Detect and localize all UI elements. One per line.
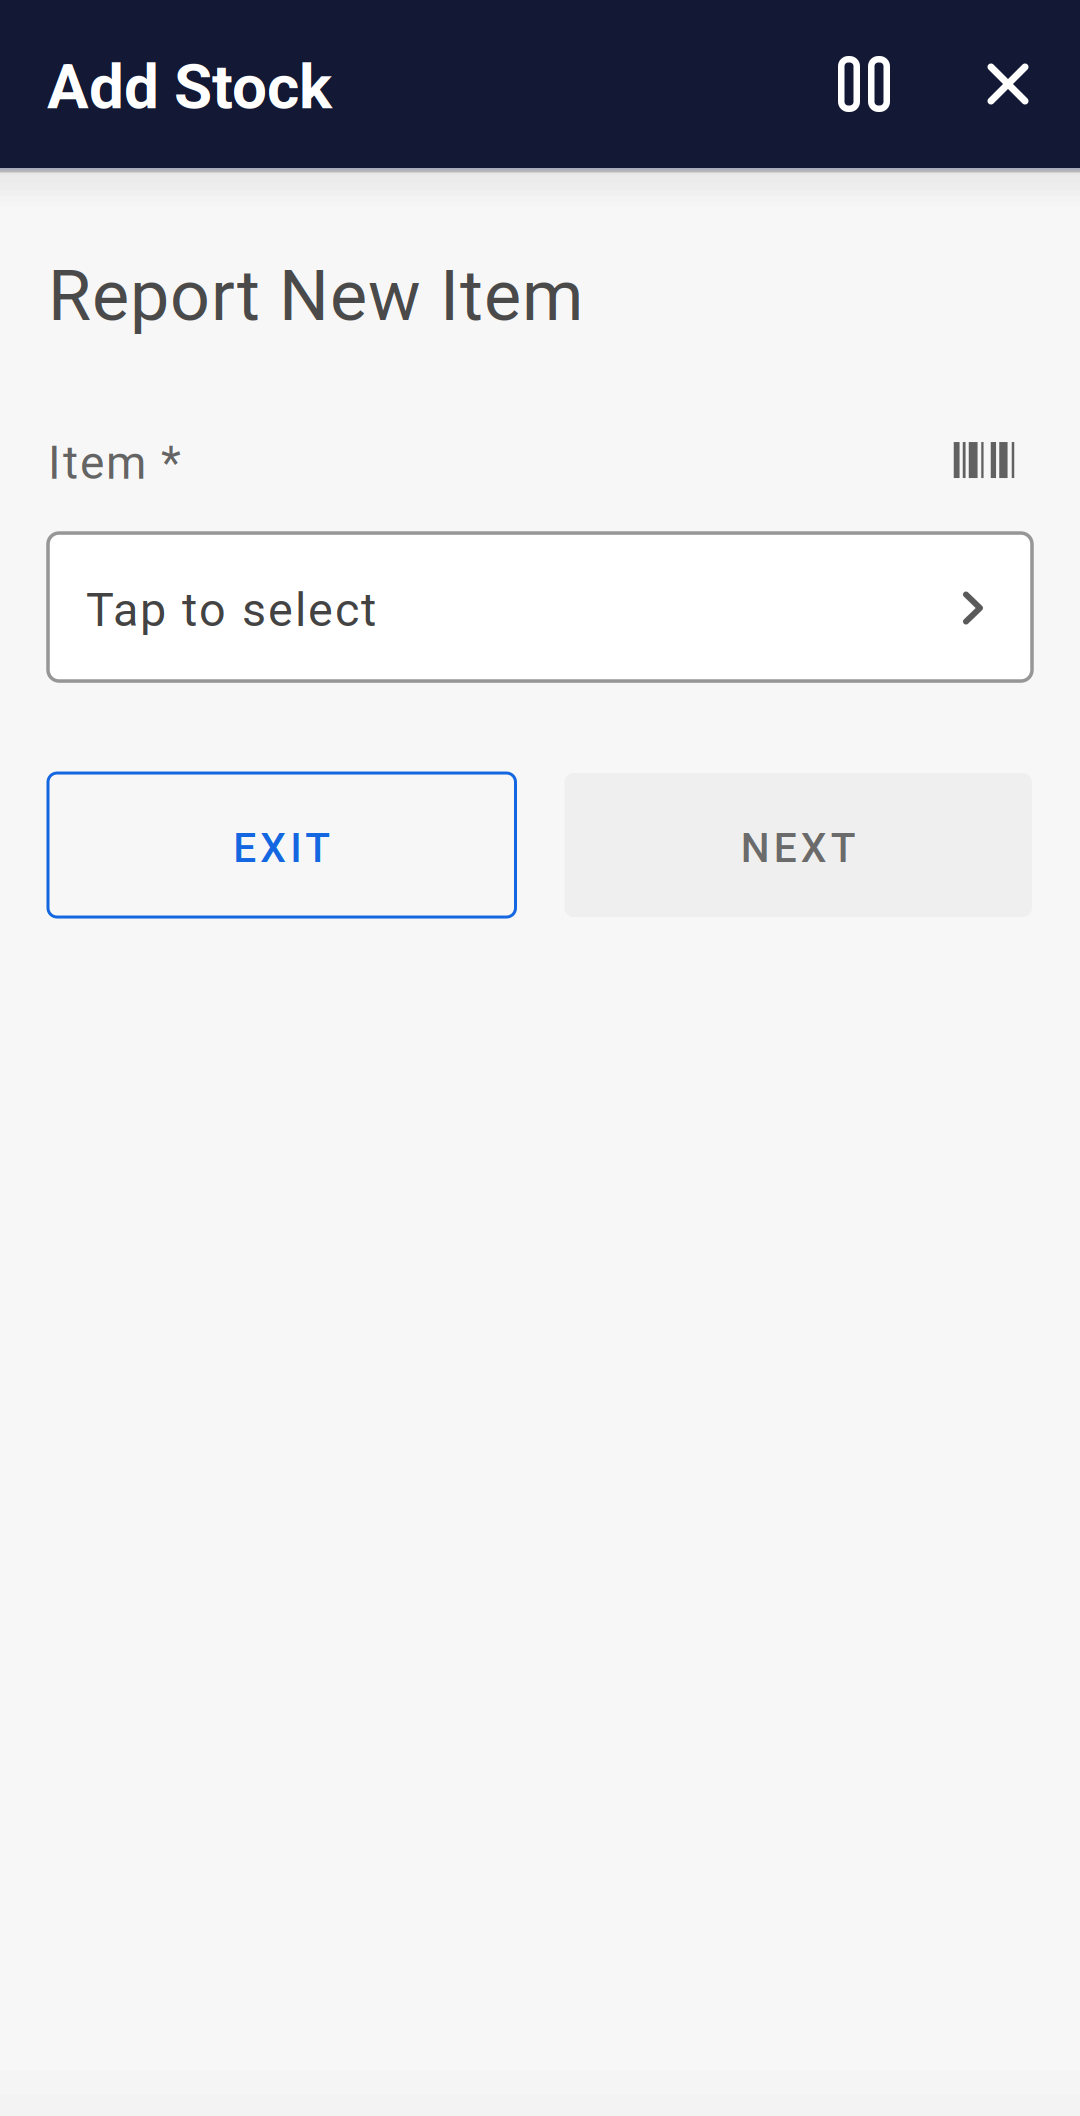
button[interactable]: Scan barcode <box>930 429 1032 497</box>
staticText: NEXT <box>741 824 856 872</box>
staticText: EXIT <box>233 824 330 872</box>
button[interactable]: Tap to select <box>48 533 1032 681</box>
staticText: Add Stock <box>47 51 332 123</box>
button[interactable]: Close <box>936 0 1080 168</box>
staticText: Item * <box>48 436 181 490</box>
button[interactable]: Split screen <box>792 0 936 168</box>
button[interactable]: NEXT <box>564 773 1032 917</box>
staticText: Report New Item <box>48 255 583 337</box>
button[interactable]: EXIT <box>48 773 515 917</box>
staticText: Tap to select <box>86 583 376 637</box>
